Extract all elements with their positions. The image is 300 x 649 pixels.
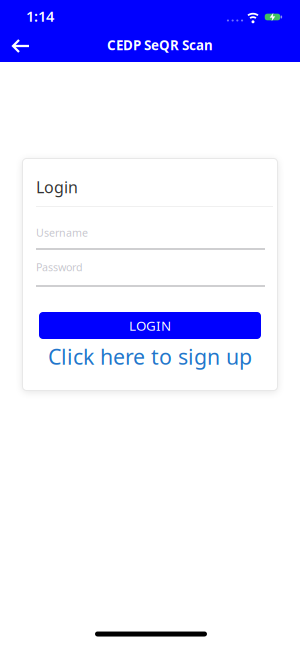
staticText: Click here to sign up bbox=[48, 342, 252, 371]
staticText: Password bbox=[36, 260, 83, 274]
button[interactable]: Click here to sign up bbox=[48, 342, 252, 371]
staticText: CEDP SeQR Scan bbox=[107, 36, 213, 54]
button[interactable]: Back bbox=[6, 32, 35, 60]
staticText: Login bbox=[36, 176, 78, 198]
button[interactable]: LOGIN bbox=[39, 312, 261, 339]
staticText: LOGIN bbox=[129, 317, 171, 334]
staticText: Username bbox=[36, 225, 88, 240]
staticText: 1:14 bbox=[26, 6, 54, 26]
